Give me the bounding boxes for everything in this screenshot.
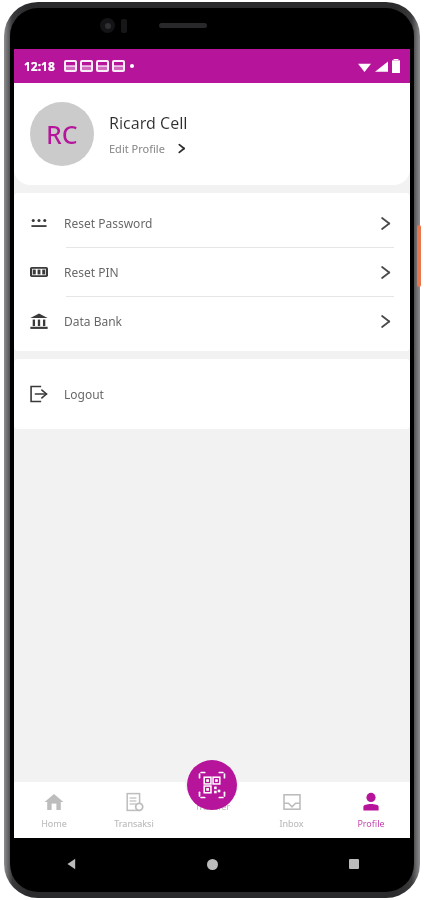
button[interactable]: Inbox [252, 782, 331, 838]
staticText: RC [46, 117, 78, 151]
button[interactable]: Data Bank [14, 297, 410, 345]
staticText: Data Bank [64, 313, 123, 329]
staticText: Profile [357, 817, 385, 829]
staticText: Edit Profile [109, 141, 165, 156]
button[interactable]: Back [0, 850, 142, 878]
button[interactable]: Recent apps [283, 850, 424, 878]
staticText: Home [41, 817, 67, 829]
staticText: Inbox [279, 817, 304, 829]
staticText: Reset Password [64, 215, 153, 231]
staticText: Transaksi [114, 817, 154, 829]
button[interactable]: Profile [331, 782, 410, 838]
button[interactable]: Edit Profile [109, 141, 188, 156]
button[interactable]: Scan QR to transfer [187, 760, 237, 810]
button[interactable]: Logout [14, 359, 410, 429]
button[interactable]: Home [142, 850, 283, 878]
button[interactable]: Transaksi [94, 782, 173, 838]
staticText: 12:18 [24, 58, 55, 74]
button[interactable]: Reset Password [14, 199, 410, 248]
staticText: Ricard Cell [109, 112, 188, 134]
staticText: Reset PIN [64, 264, 119, 280]
staticText: Logout [64, 386, 104, 402]
button[interactable]: Home [14, 782, 94, 838]
staticText: Transfer [195, 800, 230, 812]
button[interactable]: Reset PIN [14, 248, 410, 297]
